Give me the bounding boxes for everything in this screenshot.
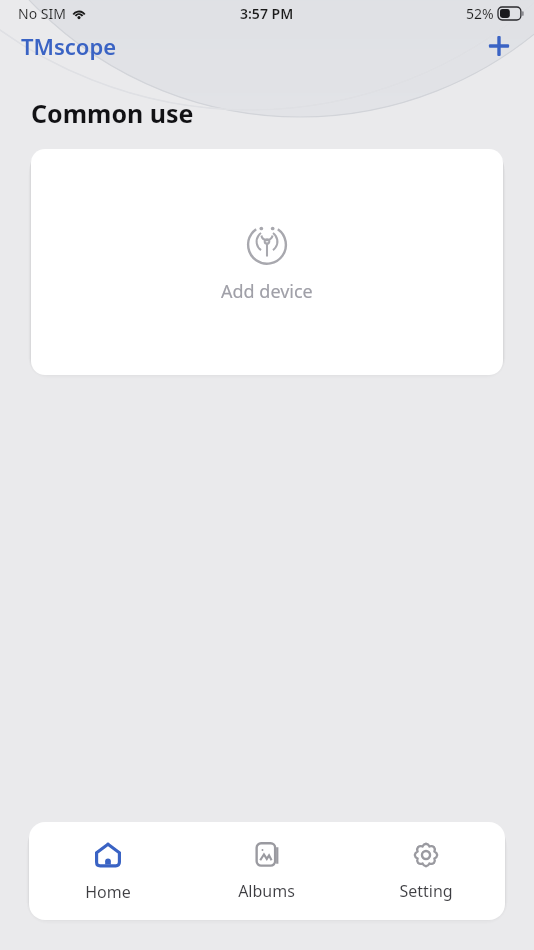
staticText: Common use [31,96,194,130]
staticText: Setting [399,880,453,902]
staticText: 52% [466,4,494,23]
button[interactable]: Home [29,830,187,913]
button[interactable]: Setting [346,831,505,912]
staticText: Add device [221,279,313,304]
staticText: TMscope [21,31,117,61]
staticText: Home [85,881,131,903]
button[interactable]: Albums [187,831,346,912]
button[interactable]: Add [480,27,518,65]
staticText: 3:57 PM [240,4,294,23]
staticText: Albums [238,880,295,902]
staticText: No SIM [18,4,66,23]
button[interactable]: Add device [31,149,503,375]
